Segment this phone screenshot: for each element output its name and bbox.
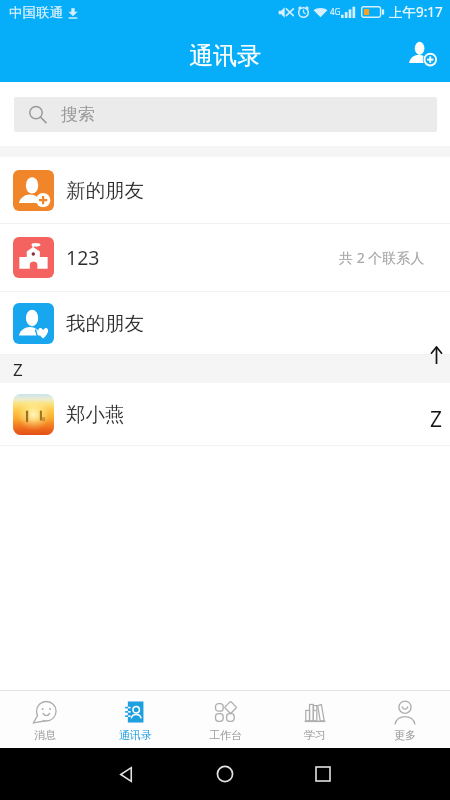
button[interactable]: Back	[104, 752, 148, 796]
button[interactable]: 工作台	[180, 691, 270, 748]
staticText: 通讯录	[119, 728, 152, 742]
button[interactable]: 新的朋友	[0, 157, 450, 223]
button[interactable]: Alphabet index	[422, 146, 450, 434]
button[interactable]: Add contact	[398, 29, 446, 77]
staticText: 搜索	[61, 104, 95, 125]
staticText: 消息	[34, 728, 56, 742]
button[interactable]: 学习	[270, 691, 360, 748]
button[interactable]: 更多	[360, 691, 450, 748]
staticText: 上午9:17	[389, 3, 443, 21]
staticText: 4G	[330, 6, 341, 17]
staticText: Z	[430, 405, 443, 434]
staticText: Z	[13, 358, 23, 381]
button[interactable]: 搜索	[14, 97, 437, 132]
button[interactable]: Recent apps	[301, 752, 345, 796]
staticText: 更多	[394, 728, 416, 742]
staticText: 共 2 个联系人	[339, 248, 425, 267]
button[interactable]: 123	[0, 224, 450, 291]
staticText: 通讯录	[189, 41, 261, 71]
button[interactable]: 郑小燕	[0, 383, 450, 445]
button[interactable]: 我的朋友	[0, 292, 450, 354]
button[interactable]: 通讯录	[90, 691, 180, 748]
staticText: 我的朋友	[66, 311, 144, 336]
staticText: 123	[66, 244, 100, 271]
staticText: 工作台	[209, 728, 242, 742]
staticText: 郑小燕	[66, 402, 125, 427]
staticText: 中国联通	[9, 4, 63, 21]
staticText: 新的朋友	[66, 178, 144, 203]
staticText: 学习	[304, 728, 326, 742]
button[interactable]: Home	[203, 752, 247, 796]
button[interactable]: 消息	[0, 691, 90, 748]
